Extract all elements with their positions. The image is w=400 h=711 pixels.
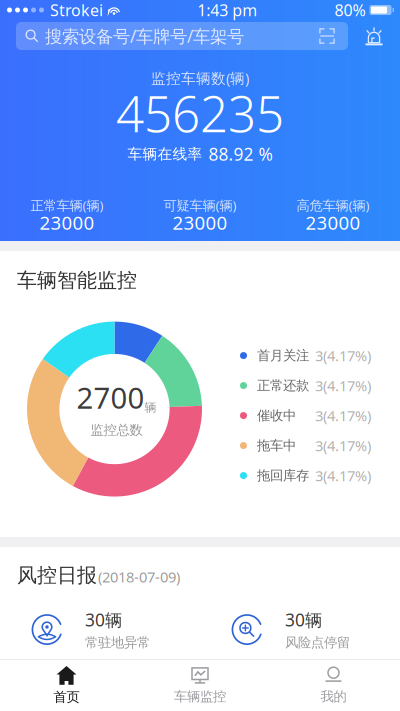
- staticText: 2700: [76, 378, 144, 417]
- staticText: 我的: [320, 688, 346, 705]
- staticText: 催收中: [257, 407, 296, 424]
- staticText: 拖回库存: [257, 467, 309, 484]
- staticText: 23000: [172, 210, 227, 235]
- staticText: 456235: [116, 80, 284, 146]
- staticText: 首页: [53, 689, 79, 705]
- staticText: 30辆: [85, 608, 122, 631]
- staticText: 车辆监控: [174, 688, 226, 705]
- staticText: 风控日报: [17, 563, 97, 588]
- staticText: Strokei: [50, 0, 103, 21]
- staticText: 拖车中: [257, 437, 296, 454]
- staticText: 正常还款: [257, 377, 309, 394]
- staticText: 88.92 %: [208, 142, 272, 165]
- staticText: 可疑车辆(辆): [163, 196, 236, 214]
- staticText: 监控总数: [90, 422, 142, 438]
- button[interactable]: 首页: [0, 659, 133, 711]
- staticText: 3(4.17%): [315, 346, 371, 365]
- staticText: 30辆: [285, 608, 322, 631]
- staticText: 3(4.17%): [315, 376, 371, 395]
- staticText: 风险点停留: [285, 634, 350, 651]
- staticText: 3(4.17%): [315, 466, 371, 485]
- staticText: 高危车辆(辆): [296, 196, 369, 214]
- button[interactable]: 搜索设备号/车牌号/车架号: [16, 22, 348, 50]
- button[interactable]: 我的: [267, 659, 400, 711]
- staticText: 首月关注: [257, 347, 309, 364]
- staticText: 1:43 pm: [197, 0, 257, 21]
- staticText: 常驻地异常: [85, 634, 150, 651]
- staticText: 监控车辆数(辆): [151, 68, 249, 88]
- staticText: 3(4.17%): [315, 436, 371, 455]
- button[interactable]: 报警: [356, 22, 392, 50]
- staticText: 80%: [334, 0, 365, 21]
- staticText: 正常车辆(辆): [30, 196, 103, 214]
- staticText: 23000: [305, 210, 360, 235]
- staticText: 辆: [144, 400, 156, 415]
- staticText: 3(4.17%): [315, 406, 371, 425]
- staticText: 车辆在线率: [127, 145, 202, 163]
- staticText: 搜索设备号/车牌号/车架号: [45, 24, 244, 47]
- button[interactable]: 30辆: [0, 608, 200, 652]
- staticText: 车辆智能监控: [17, 268, 137, 293]
- staticText: 23000: [39, 210, 94, 235]
- button[interactable]: 30辆: [200, 608, 400, 652]
- button[interactable]: 车辆监控: [133, 659, 267, 711]
- staticText: (2018-07-09): [98, 567, 180, 587]
